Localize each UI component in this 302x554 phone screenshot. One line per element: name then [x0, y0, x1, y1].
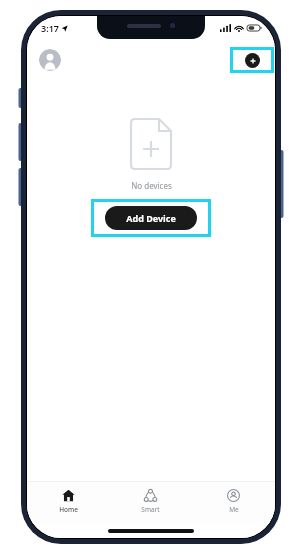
button[interactable]: Me	[192, 482, 275, 524]
staticText: Home	[59, 505, 78, 514]
staticText: Smart	[141, 505, 160, 514]
button[interactable]: Home	[27, 482, 109, 524]
button[interactable]: Add Device	[105, 206, 197, 230]
button[interactable]: Add	[245, 53, 260, 68]
staticText: Me	[229, 505, 239, 514]
button[interactable]: Smart	[109, 482, 192, 524]
button[interactable]: Profile	[39, 49, 61, 71]
staticText: No devices	[131, 180, 172, 191]
staticText: Add Device	[126, 212, 176, 224]
staticText: 3:17	[41, 22, 59, 34]
